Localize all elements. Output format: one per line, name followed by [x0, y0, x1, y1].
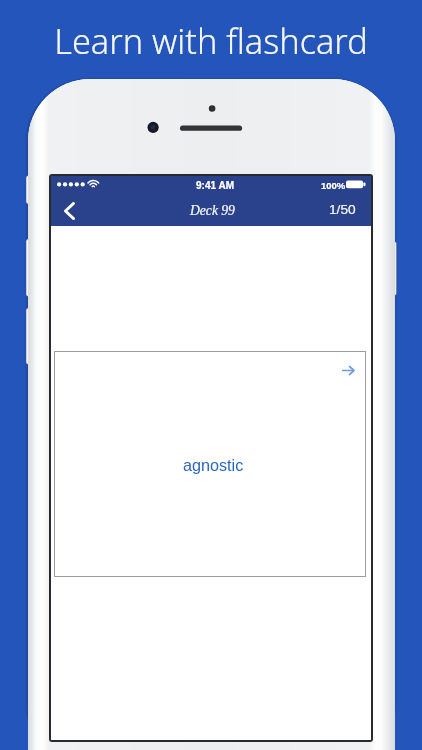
staticText: 1/50	[329, 202, 356, 217]
staticText: Learn with flashcard	[54, 17, 368, 64]
button[interactable]: agnostic	[54, 351, 366, 577]
staticText: 100%	[321, 180, 346, 191]
staticText: Deck 99	[190, 203, 235, 218]
staticText: 9:41 AM	[196, 180, 234, 191]
button[interactable]: Back	[54, 197, 84, 225]
staticText: agnostic	[183, 456, 244, 474]
button[interactable]: Next card	[338, 362, 358, 378]
